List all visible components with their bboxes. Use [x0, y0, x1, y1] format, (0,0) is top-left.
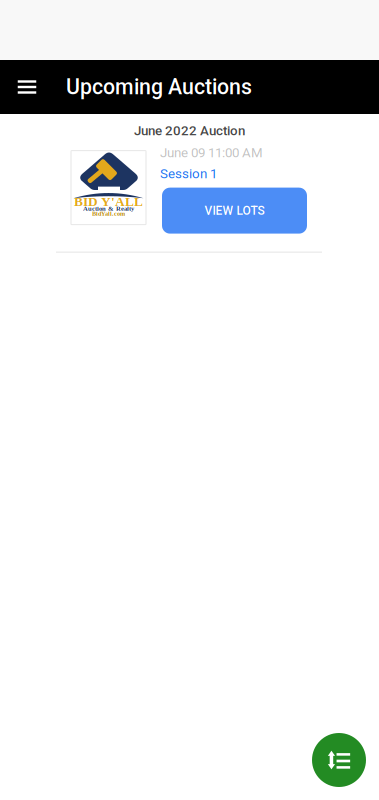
button[interactable]: VIEW LOTS [162, 188, 307, 234]
button[interactable]: Menu [0, 60, 54, 114]
staticText: Session 1 [160, 166, 217, 181]
staticText: June 2022 Auction [134, 123, 245, 139]
staticText: Auction & Realty [83, 205, 134, 212]
staticText: BidYall.com [92, 210, 125, 217]
staticText: BID Y'ALL [74, 194, 143, 209]
button[interactable]: Sort [312, 733, 366, 787]
staticText: June 09 11:00 AM [160, 145, 263, 160]
staticText: VIEW LOTS [204, 204, 264, 218]
staticText: Upcoming Auctions [66, 74, 252, 99]
